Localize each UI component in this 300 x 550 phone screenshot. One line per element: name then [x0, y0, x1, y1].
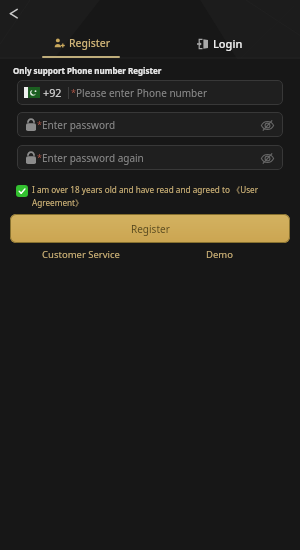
- staticText: +92: [43, 85, 62, 100]
- button[interactable]: I am over 18 years old and have read and…: [16, 184, 287, 208]
- staticText: Agreement》: [32, 197, 84, 208]
- button[interactable]: Register: [10, 214, 290, 243]
- button[interactable]: Register: [30, 28, 130, 59]
- button[interactable]: Login: [178, 28, 278, 56]
- staticText: Register: [131, 222, 170, 236]
- button[interactable]: Back: [0, 0, 30, 30]
- button[interactable]: Customer Service: [38, 247, 123, 261]
- button[interactable]: Show password: [255, 113, 279, 137]
- button[interactable]: +92: [17, 80, 283, 105]
- staticText: I am over 18 years old and have read and…: [32, 184, 259, 195]
- button[interactable]: *: [17, 145, 283, 170]
- button[interactable]: *: [17, 112, 283, 137]
- staticText: *: [71, 86, 76, 98]
- button[interactable]: Show password: [255, 146, 279, 170]
- staticText: Demo: [206, 248, 233, 261]
- staticText: Register: [69, 36, 111, 50]
- staticText: *: [37, 118, 42, 130]
- staticText: Only support Phone number Register: [13, 65, 162, 76]
- staticText: *: [37, 151, 42, 163]
- staticText: Enter password again: [42, 151, 144, 165]
- staticText: Login: [213, 36, 243, 51]
- staticText: Enter password: [42, 118, 116, 132]
- staticText: Customer Service: [42, 248, 120, 261]
- button[interactable]: Demo: [189, 247, 249, 261]
- staticText: Please enter Phone number: [76, 86, 208, 100]
